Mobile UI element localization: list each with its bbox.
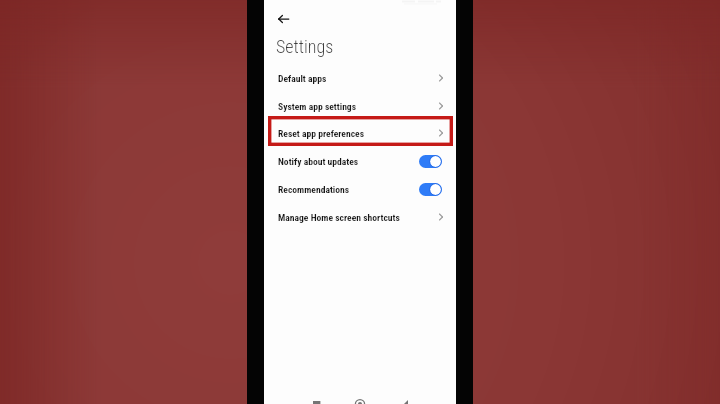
- button[interactable]: Recommendations switch, on: [419, 183, 442, 196]
- button[interactable]: Default apps: [264, 67, 456, 89]
- button[interactable]: System app settings: [264, 95, 456, 117]
- button[interactable]: Manage Home screen shortcuts: [264, 206, 456, 228]
- button[interactable]: Reset app preferences: [264, 122, 456, 144]
- button[interactable]: Notify about updates switch, on: [419, 155, 442, 168]
- staticText: Notify about updates: [278, 156, 359, 167]
- button[interactable]: Recent apps: [307, 392, 325, 404]
- button[interactable]: Recommendations: [264, 178, 456, 200]
- button[interactable]: Back: [396, 392, 414, 404]
- staticText: Reset app preferences: [278, 128, 365, 139]
- button[interactable]: Notify about updates: [264, 150, 456, 172]
- staticText: Recommendations: [278, 184, 350, 195]
- staticText: Manage Home screen shortcuts: [278, 212, 400, 223]
- staticText: Settings: [276, 36, 334, 57]
- staticText: System app settings: [278, 101, 357, 112]
- button[interactable]: Navigate up: [269, 6, 299, 31]
- staticText: Default apps: [278, 73, 327, 84]
- button[interactable]: Home: [350, 392, 368, 404]
